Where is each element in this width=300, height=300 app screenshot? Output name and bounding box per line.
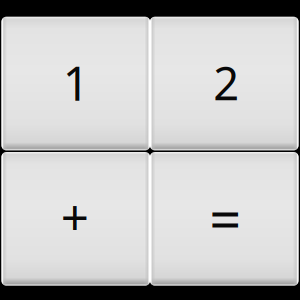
button[interactable]: = bbox=[150, 152, 298, 286]
staticText: 1 bbox=[63, 52, 90, 114]
staticText: + bbox=[61, 183, 89, 249]
button[interactable]: 2 bbox=[150, 17, 298, 150]
staticText: 2 bbox=[213, 52, 239, 113]
staticText: = bbox=[209, 181, 241, 255]
button[interactable]: + bbox=[1, 152, 150, 286]
button[interactable]: 1 bbox=[1, 17, 150, 150]
